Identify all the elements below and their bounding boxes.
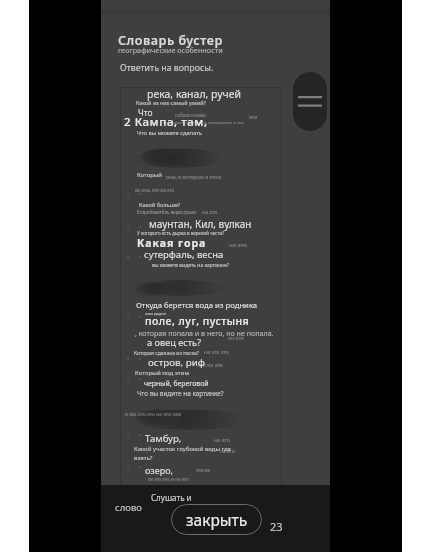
staticText: Какая гора: [137, 236, 207, 250]
staticText: это на это: [198, 361, 223, 368]
staticText: собака номер: [175, 112, 206, 118]
staticText: Ответить на вопросы.: [120, 62, 214, 74]
staticText: на это: [202, 208, 218, 215]
staticText: Что: [138, 107, 153, 119]
staticText: он это это, и на это: [148, 476, 189, 482]
staticText: Которая сделана из песка?: [134, 350, 199, 357]
staticText: маунтан, Кил, вулкан: [149, 217, 252, 231]
staticText: Откуда берется вода из родника: [136, 300, 258, 310]
staticText: географические особенности: [118, 45, 223, 55]
staticText: поле, луг, пустыня: [145, 314, 250, 328]
staticText: Слушать и: [151, 492, 192, 503]
staticText: на это: [220, 448, 235, 455]
staticText: а овец есть?: [147, 336, 202, 349]
staticText: Что вы можете сделать: [137, 129, 203, 137]
staticText: закрыть: [186, 509, 248, 530]
staticText: на это это: [204, 348, 229, 355]
button[interactable]: Menu: [293, 72, 327, 131]
staticText: вы можете сказать, в котором вы в это: [163, 119, 244, 125]
staticText: на это: [214, 436, 230, 443]
staticText: Который: [137, 171, 162, 179]
staticText: Какой участок глубокой воды где: [134, 445, 231, 453]
staticText: 2 Кампа, там,: [124, 114, 208, 130]
staticText: Какой больше?: [139, 201, 181, 209]
staticText: на это: [229, 241, 247, 249]
staticText: река, канал, ручей: [147, 87, 242, 101]
staticText: озеро,: [145, 464, 173, 476]
staticText: , которая попала и в него, но не попала.: [135, 328, 274, 338]
staticText: 23: [270, 519, 283, 534]
button[interactable]: закрыть: [171, 504, 262, 535]
staticText: вы можете видеть на картинке?: [152, 262, 229, 269]
staticText: сутерфаль, весна: [144, 248, 224, 261]
staticText: Что вы видите на картинке?: [137, 389, 224, 398]
staticText: их она, кто на это: [135, 187, 174, 193]
staticText: Словарь бустер: [118, 32, 223, 49]
staticText: У которого есть дырка в верхней части?: [137, 230, 225, 236]
staticText: и он, кто это на эти она: [125, 411, 182, 418]
staticText: взять?: [134, 454, 153, 462]
staticText: Какой из них самый узкий?: [136, 99, 206, 106]
staticText: Который под этим: [135, 368, 190, 376]
staticText: Тамбур,: [145, 432, 182, 445]
staticText: или даунл: [145, 310, 167, 316]
staticText: слово: [115, 501, 142, 514]
staticText: он это: [228, 334, 244, 341]
staticText: остров, риф: [148, 356, 205, 369]
staticText: Егорийкаетбль вкрисграни: [137, 209, 197, 215]
staticText: эти: [249, 113, 258, 120]
staticText: это на: [196, 467, 211, 474]
staticText: черный, береговой: [144, 379, 209, 388]
staticText: они, в котором в этом: [166, 173, 222, 180]
